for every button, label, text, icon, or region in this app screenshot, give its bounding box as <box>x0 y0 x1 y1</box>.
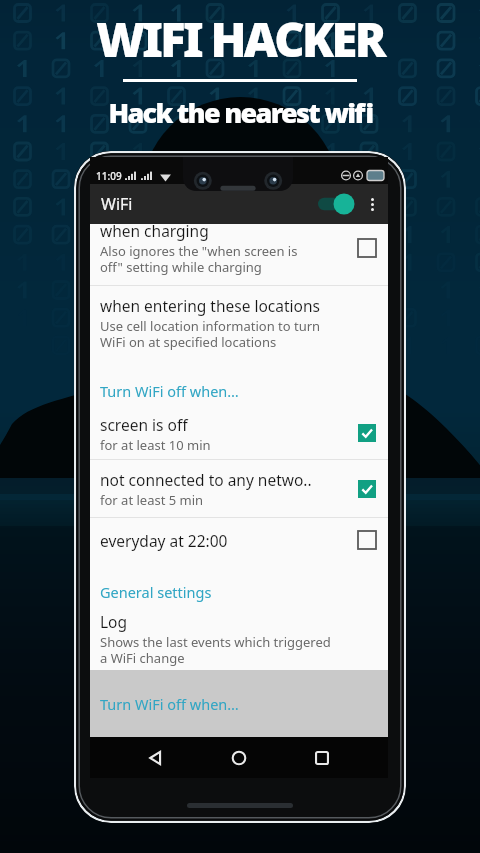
staticText: Log <box>100 611 128 632</box>
staticText: Use cell location information to turn Wi… <box>100 317 321 351</box>
button[interactable]: Toggle screen is off <box>358 424 376 442</box>
button[interactable]: WiFi toggle <box>315 191 357 217</box>
staticText: not connected to any netwo.. <box>100 469 312 490</box>
staticText: Shows the last events which triggered a … <box>100 633 331 667</box>
button[interactable]: Log <box>90 607 388 670</box>
staticText: when entering these locations <box>100 295 320 316</box>
staticText: 11:09 <box>96 169 122 183</box>
button[interactable]: Toggle when charging <box>358 239 376 257</box>
button[interactable]: everyday at 22:00 <box>90 518 388 562</box>
staticText: for at least 10 min <box>100 436 211 454</box>
button[interactable]: when charging <box>90 224 388 285</box>
button[interactable]: screen is off <box>90 407 388 459</box>
staticText: Turn WiFi off when… <box>100 381 239 401</box>
staticText: Hack the nearest wifi <box>108 94 373 131</box>
button[interactable]: Turn WiFi off when… <box>90 376 388 406</box>
staticText: General settings <box>100 582 212 602</box>
staticText: screen is off <box>100 414 188 435</box>
button[interactable]: Turn WiFi off when… <box>90 670 388 737</box>
button[interactable]: when entering these locations <box>90 286 388 359</box>
staticText: for at least 5 min <box>100 491 204 509</box>
button[interactable]: Toggle everyday at 22:00 <box>358 531 376 549</box>
staticText: WiFi <box>101 193 133 215</box>
staticText: everyday at 22:00 <box>100 530 228 551</box>
staticText: WIFI HACKER <box>96 7 384 71</box>
staticText: Turn WiFi off when… <box>100 694 239 714</box>
staticText: Also ignores the "when screen is off" se… <box>100 242 298 276</box>
button[interactable]: Recents <box>305 741 339 775</box>
button[interactable]: not connected to any netwo.. <box>90 460 388 517</box>
staticText: when charging <box>100 220 209 241</box>
button[interactable]: Back <box>139 741 173 775</box>
button[interactable]: General settings <box>90 577 388 607</box>
button[interactable]: Toggle not connected to any netwo.. <box>358 480 376 498</box>
button[interactable]: Home <box>222 741 256 775</box>
button[interactable]: More options <box>361 190 383 218</box>
